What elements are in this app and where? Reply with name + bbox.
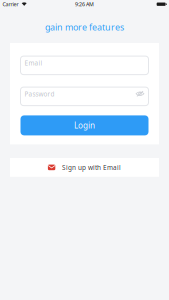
staticText: gain more features (45, 21, 124, 33)
staticText: Login (74, 120, 95, 131)
staticText: Email (24, 59, 42, 67)
button[interactable]: Login (20, 115, 148, 135)
staticText: Sign up with Email (62, 163, 121, 172)
staticText: Password (24, 90, 54, 98)
staticText: 9:26 AM (75, 1, 94, 8)
staticText: Carrier (2, 1, 18, 8)
button[interactable]: Sign up with Email (10, 158, 159, 177)
